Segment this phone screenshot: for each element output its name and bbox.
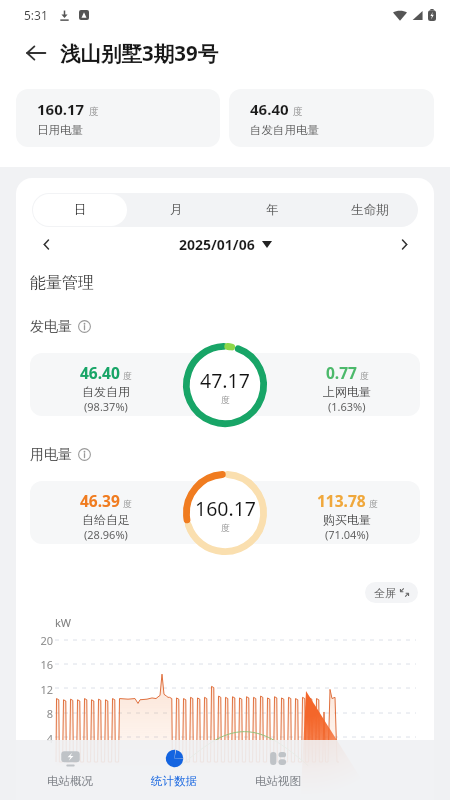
staticText: 160.17 xyxy=(37,99,85,119)
button[interactable]: 2025/01/06 xyxy=(57,235,393,254)
button[interactable]: 月 xyxy=(129,194,223,226)
staticText: 度 xyxy=(293,105,303,118)
staticText: 46.40 xyxy=(80,362,120,383)
staticText: 度 xyxy=(221,395,230,406)
staticText: (1.63%) xyxy=(328,399,366,414)
staticText: 自发自用电量 xyxy=(250,123,319,137)
staticText: 20 xyxy=(26,633,53,648)
staticText: 2025/01/06 xyxy=(179,235,255,254)
staticText: 统计数据 xyxy=(151,774,197,788)
staticText: 46.39 xyxy=(80,490,120,511)
staticText: 上网电量 xyxy=(323,384,371,399)
staticText: 度 xyxy=(89,105,99,118)
staticText: 生命期 xyxy=(351,202,389,218)
staticText: 能量管理 xyxy=(30,273,94,293)
staticText: 4 xyxy=(26,731,53,746)
staticText: 113.78 xyxy=(317,490,366,511)
staticText: 0.77 xyxy=(326,362,357,383)
staticText: 电站概况 xyxy=(47,774,93,788)
staticText: 5:31 xyxy=(24,7,48,23)
button[interactable]: Next day xyxy=(393,233,415,255)
staticText: 日用电量 xyxy=(37,123,83,137)
staticText: 电站视图 xyxy=(255,774,301,788)
staticText: 发电量 xyxy=(30,318,72,336)
staticText: 度 xyxy=(123,371,132,382)
button[interactable]: 全屏 xyxy=(365,582,418,603)
button[interactable]: 46.40 xyxy=(229,89,434,147)
staticText: 度 xyxy=(369,499,378,510)
staticText: 47.17 xyxy=(200,367,250,394)
staticText: 用电量 xyxy=(30,446,72,464)
staticText: 8 xyxy=(26,706,53,721)
button[interactable]: 生命期 xyxy=(322,194,417,226)
staticText: 46.40 xyxy=(250,99,289,119)
staticText: 12 xyxy=(26,682,53,697)
button[interactable]: 电站概况 xyxy=(18,749,122,788)
staticText: 浅山别墅3期39号 xyxy=(60,39,219,67)
staticText: 年 xyxy=(266,202,279,218)
staticText: (28.96%) xyxy=(84,527,128,542)
staticText: 160.17 xyxy=(195,495,256,522)
staticText: (98.37%) xyxy=(84,399,128,414)
button[interactable]: 年 xyxy=(225,194,320,226)
button[interactable]: Previous day xyxy=(35,233,57,255)
staticText: 日 xyxy=(74,202,87,218)
staticText: 度 xyxy=(123,499,132,510)
staticText: 自发自用 xyxy=(82,384,130,399)
staticText: 购买电量 xyxy=(323,512,371,527)
button[interactable]: 统计数据 xyxy=(122,749,226,788)
staticText: 全屏 xyxy=(374,586,396,600)
staticText: 度 xyxy=(221,523,230,534)
staticText: kW xyxy=(55,615,72,630)
staticText: 月 xyxy=(170,202,183,218)
staticText: (71.04%) xyxy=(325,527,369,542)
staticText: 16 xyxy=(26,657,53,672)
button[interactable]: 160.17 xyxy=(16,89,220,147)
button[interactable]: 电站视图 xyxy=(226,749,330,788)
button[interactable]: 日 xyxy=(33,194,127,226)
staticText: 度 xyxy=(360,371,369,382)
staticText: 自给自足 xyxy=(82,512,130,527)
button[interactable]: Back xyxy=(20,37,52,69)
